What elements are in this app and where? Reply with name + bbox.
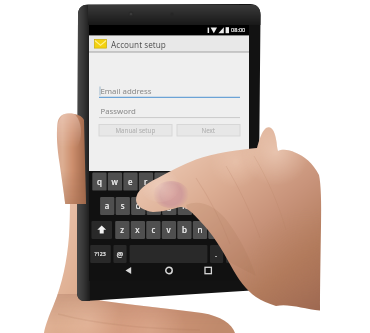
button[interactable]: Hand holding tablet showing Account setu… <box>0 0 370 333</box>
